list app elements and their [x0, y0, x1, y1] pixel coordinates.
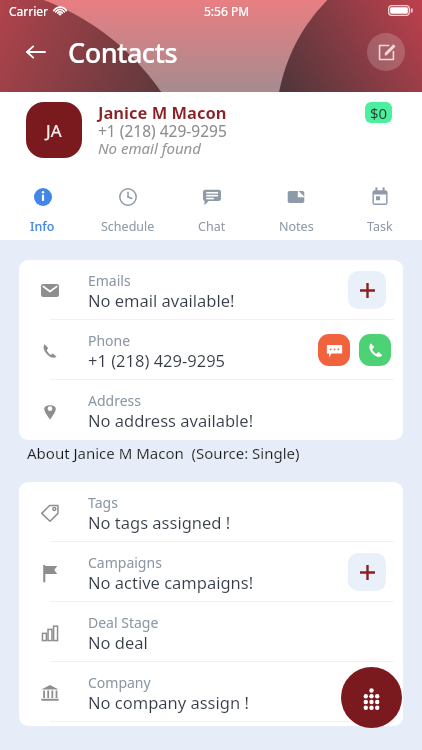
button[interactable]: Call: [359, 334, 391, 366]
staticText: JA: [46, 119, 62, 142]
staticText: Info: [30, 218, 55, 235]
button[interactable]: Deal Stage: [19, 602, 403, 662]
button[interactable]: Back: [20, 37, 50, 67]
staticText: Contacts: [68, 34, 178, 71]
button[interactable]: Notes: [254, 173, 338, 235]
button[interactable]: Schedule: [85, 173, 170, 235]
staticText: Phone: [88, 331, 131, 350]
staticText: Task: [367, 218, 393, 235]
button[interactable]: Info: [0, 173, 85, 235]
staticText: No email available!: [88, 289, 235, 311]
button[interactable]: Task: [338, 173, 422, 235]
staticText: +1 (218) 429-9295: [88, 349, 226, 371]
staticText: Tags: [88, 493, 118, 512]
staticText: +1 (218) 429-9295: [98, 120, 227, 141]
button[interactable]: Emails: [19, 260, 403, 320]
staticText: Emails: [88, 271, 131, 290]
button[interactable]: Address: [19, 380, 403, 440]
staticText: $0: [370, 103, 388, 123]
button[interactable]: Campaigns: [19, 542, 403, 602]
button[interactable]: Phone: [19, 320, 403, 380]
staticText: 5:56 PM: [204, 3, 250, 19]
button[interactable]: $0: [365, 102, 392, 123]
staticText: Company: [88, 673, 151, 692]
button[interactable]: Add: [348, 271, 386, 309]
button[interactable]: Message: [318, 334, 350, 366]
staticText: Schedule: [101, 218, 155, 235]
staticText: No address available!: [88, 409, 254, 431]
staticText: About Janice M Macon (Source: Single): [27, 443, 300, 463]
button[interactable]: Tags: [19, 482, 403, 542]
button[interactable]: Chat: [170, 173, 254, 235]
staticText: Carrier: [9, 3, 49, 19]
staticText: No company assign !: [88, 691, 249, 713]
button[interactable]: Add: [348, 553, 386, 591]
staticText: No tags assigned !: [88, 511, 231, 533]
staticText: Deal Stage: [88, 613, 159, 632]
staticText: No deal: [88, 631, 148, 653]
staticText: Address: [88, 391, 141, 410]
staticText: Notes: [279, 218, 314, 235]
button[interactable]: Company: [19, 662, 403, 722]
button[interactable]: Edit: [367, 33, 405, 71]
staticText: Campaigns: [88, 553, 162, 572]
staticText: No active campaigns!: [88, 571, 254, 593]
staticText: Janice M Macon: [98, 101, 227, 123]
staticText: Chat: [198, 218, 226, 235]
button[interactable]: Dialpad: [341, 667, 402, 728]
staticText: No email found: [98, 138, 201, 158]
